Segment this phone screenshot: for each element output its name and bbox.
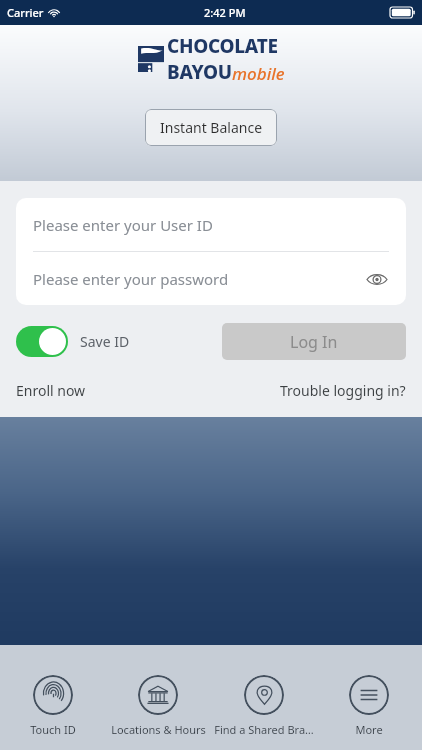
button[interactable]: Touch ID <box>3 663 103 737</box>
staticText: Touch ID <box>30 722 76 737</box>
staticText: BAYOU <box>167 59 232 85</box>
button[interactable]: Log In <box>222 323 406 360</box>
button[interactable]: Save ID <box>16 326 130 357</box>
button[interactable]: Please enter your password <box>16 252 406 305</box>
staticText: Trouble logging in? <box>280 381 406 400</box>
staticText: Enroll now <box>16 381 86 400</box>
staticText: Please enter your password <box>33 269 229 289</box>
staticText: Instant Balance <box>160 118 263 137</box>
button[interactable]: Find a Shared Bra… <box>214 663 314 737</box>
button[interactable]: Show password <box>365 267 389 291</box>
staticText: mobile <box>232 62 285 85</box>
staticText: Carrier <box>7 5 44 20</box>
staticText: Save ID <box>80 332 130 351</box>
staticText: More <box>355 722 383 737</box>
button[interactable]: Instant Balance <box>145 109 277 146</box>
staticText: Please enter your User ID <box>33 215 213 235</box>
button[interactable]: Please enter your User ID <box>16 198 406 251</box>
staticText: CHOCOLATE <box>167 33 278 59</box>
button[interactable]: Trouble logging in? <box>280 381 406 400</box>
staticText: 2:42 PM <box>204 5 246 20</box>
staticText: Log In <box>290 331 338 353</box>
button[interactable]: Enroll now <box>16 381 86 400</box>
button[interactable]: Locations & Hours <box>108 663 208 737</box>
button[interactable]: More <box>319 663 419 737</box>
staticText: Find a Shared Bra… <box>214 722 314 737</box>
staticText: Locations & Hours <box>111 722 206 737</box>
